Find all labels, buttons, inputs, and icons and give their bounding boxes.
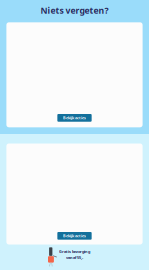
staticText: vanaf 55,-: [66, 255, 83, 260]
button[interactable]: Bekijk acties: [57, 232, 92, 240]
button[interactable]: Bekijk acties: [57, 114, 92, 122]
staticText: Bekijk acties: [63, 233, 86, 238]
staticText: Bekijk acties: [63, 115, 86, 120]
staticText: Niets vergeten?: [40, 4, 108, 16]
staticText: Gratis bezorging: [59, 249, 90, 254]
